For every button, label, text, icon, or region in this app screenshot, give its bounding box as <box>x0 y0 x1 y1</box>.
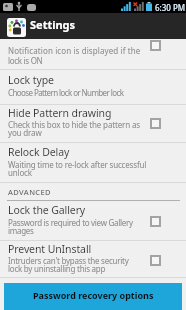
staticText: Notification icon is displayed if the <box>8 45 141 56</box>
staticText: Lock type <box>8 73 54 87</box>
staticText: Intruders can't bypass the security lock… <box>8 255 129 274</box>
staticText: Choose Pattern lock or Number lock <box>8 87 124 98</box>
staticText: Hide Pattern drawing <box>8 106 112 120</box>
staticText: Relock Delay <box>8 145 70 159</box>
button[interactable] <box>150 118 161 129</box>
button[interactable] <box>0 38 186 69</box>
button[interactable] <box>150 40 161 51</box>
button[interactable] <box>150 216 161 227</box>
staticText: Check this box to hide the pattern as yo… <box>8 119 140 138</box>
staticText: Prevent UnInstall <box>8 242 92 256</box>
staticText: Password recovery options <box>33 289 154 301</box>
button[interactable] <box>150 255 161 266</box>
button[interactable] <box>0 143 186 182</box>
button[interactable] <box>0 241 186 277</box>
staticText: Settings <box>30 17 76 32</box>
button[interactable] <box>0 70 186 104</box>
button[interactable] <box>0 105 186 142</box>
staticText: Password is required to view Gallery ima… <box>8 217 133 236</box>
staticText: Lock the Gallery <box>8 203 86 217</box>
staticText: Waiting time to re-lock after successful… <box>8 159 147 178</box>
button[interactable] <box>0 202 186 240</box>
staticText: ADVANCED <box>8 187 51 197</box>
staticText: 6:30 PM <box>155 2 186 13</box>
staticText: lock is ON <box>8 55 43 66</box>
button[interactable]: Password recovery options <box>4 283 182 310</box>
